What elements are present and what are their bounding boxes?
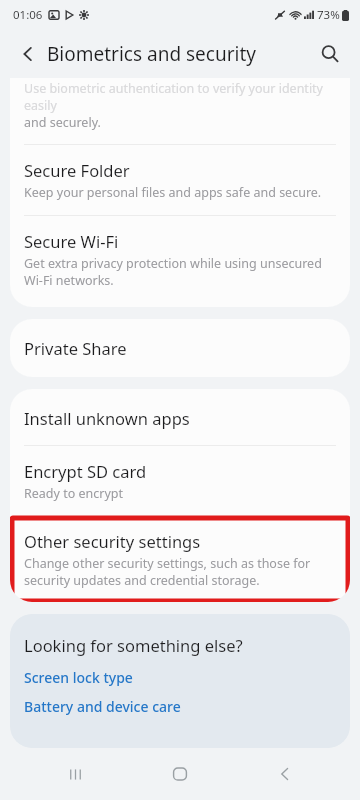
button[interactable]: Other security settings xyxy=(10,517,350,602)
button[interactable]: Back xyxy=(6,32,50,76)
staticText: 73% xyxy=(317,7,340,23)
button[interactable]: Secure Folder xyxy=(10,145,350,215)
button[interactable]: Back xyxy=(255,748,315,800)
staticText: Change other security settings, such as … xyxy=(24,555,336,589)
button[interactable]: Recents xyxy=(45,748,105,800)
staticText: Battery and device care xyxy=(24,697,181,716)
staticText: Ready to encrypt xyxy=(24,485,123,502)
staticText: 01:06 xyxy=(13,7,43,23)
button[interactable]: Screen lock type xyxy=(24,668,336,687)
staticText: Secure Wi-Fi xyxy=(24,230,119,252)
staticText: Private Share xyxy=(24,337,127,359)
staticText: Encrypt SD card xyxy=(24,460,147,482)
button[interactable]: Install unknown apps xyxy=(10,389,350,445)
staticText: Install unknown apps xyxy=(24,407,190,429)
button[interactable]: Search xyxy=(308,32,352,76)
button[interactable]: Secure Wi-Fi xyxy=(10,216,350,303)
staticText: Keep your personal files and apps safe a… xyxy=(24,184,322,201)
staticText: Secure Folder xyxy=(24,159,130,181)
staticText: Screen lock type xyxy=(24,668,133,687)
button[interactable]: Private Share xyxy=(10,319,350,377)
button[interactable]: Encrypt SD card xyxy=(10,446,350,516)
staticText: Other security settings xyxy=(24,530,201,552)
staticText: Use biometric authentication to verify y… xyxy=(24,80,336,114)
staticText: Looking for something else? xyxy=(24,634,243,656)
button[interactable]: Battery and device care xyxy=(24,697,336,716)
staticText: Biometrics and security xyxy=(47,41,257,67)
button[interactable]: Home xyxy=(150,748,210,800)
staticText: Get extra privacy protection while using… xyxy=(24,255,336,289)
staticText: and securely. xyxy=(24,114,101,131)
button[interactable]: Use biometric authentication to verify y… xyxy=(10,78,350,144)
